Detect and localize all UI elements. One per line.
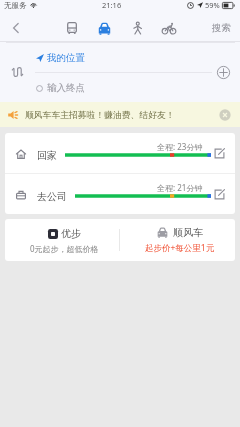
staticText: 我的位置	[47, 52, 85, 64]
button[interactable]: Add waypoint	[214, 63, 232, 81]
button[interactable]: Swap endpoints	[8, 63, 26, 81]
staticText: 顺风车	[173, 226, 203, 239]
button[interactable]: Edit route	[210, 144, 228, 162]
button[interactable]: Close banner	[219, 109, 231, 121]
button[interactable]: Transit	[55, 14, 88, 42]
staticText: 全程: 21分钟	[157, 182, 203, 193]
button[interactable]: 回家	[5, 133, 235, 173]
staticText: 21:16	[102, 0, 122, 10]
button[interactable]: 我的位置	[0, 42, 240, 73]
button[interactable]: 去公司	[5, 174, 235, 214]
button[interactable]: Drive	[88, 14, 121, 42]
button[interactable]: Walk	[121, 14, 154, 42]
button[interactable]: Bike	[154, 14, 187, 42]
button[interactable]: 输入终点	[0, 73, 240, 103]
staticText: 全程: 23分钟	[157, 141, 203, 152]
staticText: 无服务	[4, 1, 27, 10]
staticText: 去公司	[37, 190, 67, 203]
staticText: 59%	[205, 0, 220, 10]
staticText: 0元起步，超低价格	[30, 243, 99, 254]
staticText: 输入终点	[47, 82, 85, 94]
button[interactable]: 顺风车	[120, 219, 235, 261]
staticText: 优步	[61, 227, 81, 240]
button[interactable]: Back	[0, 14, 31, 42]
button[interactable]: Edit route	[210, 185, 228, 203]
button[interactable]: 顺风车车主招募啦！赚油费、结好友！	[0, 102, 240, 127]
staticText: 起步价+每公里1元	[145, 242, 215, 254]
button[interactable]: 优步	[5, 219, 119, 261]
staticText: 回家	[37, 149, 57, 162]
staticText: 顺风车车主招募啦！赚油费、结好友！	[25, 110, 175, 121]
button[interactable]: 搜索	[202, 14, 240, 42]
staticText: 搜索	[212, 22, 231, 34]
